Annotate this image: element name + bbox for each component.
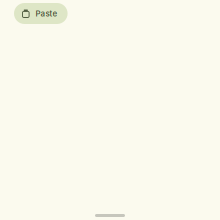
button[interactable]: Paste bbox=[14, 3, 68, 24]
staticText: Paste bbox=[36, 9, 58, 18]
